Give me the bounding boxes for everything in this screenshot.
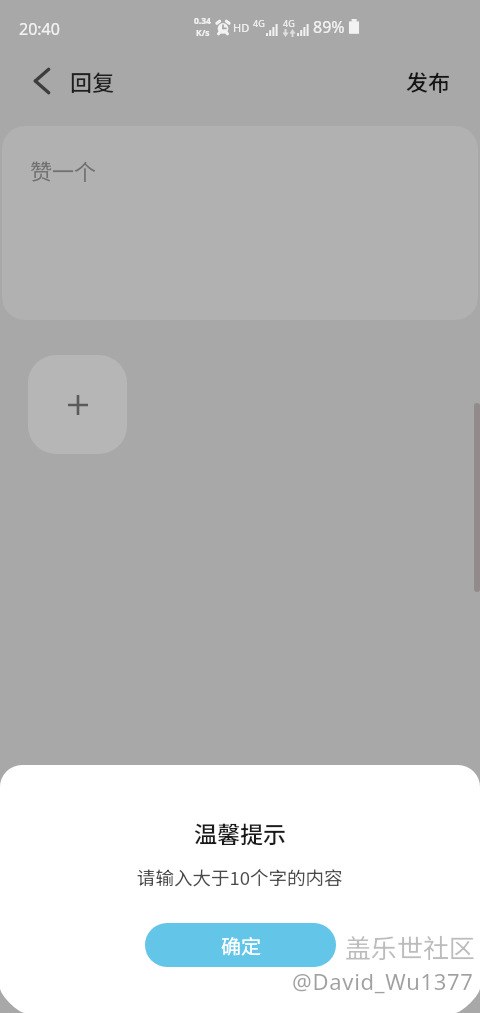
staticText: K/s [196, 27, 210, 39]
staticText: 发布 [406, 65, 451, 97]
button[interactable]: Back [0, 50, 125, 112]
button[interactable]: 确定 [145, 923, 336, 967]
button[interactable]: 赞一个 [2, 126, 478, 320]
staticText: 4G [253, 17, 265, 29]
staticText: 确定 [221, 931, 261, 960]
staticText: 4G [283, 17, 295, 29]
staticText: 回复 [70, 65, 115, 97]
staticText: @David_Wu1377 [292, 966, 474, 996]
staticText: 89% [313, 16, 345, 38]
staticText: 赞一个 [30, 154, 97, 186]
staticText: 0.34 [194, 15, 211, 27]
staticText: 请输入大于10个字的内容 [137, 864, 343, 891]
button[interactable]: 发布 [386, 50, 480, 112]
other: Back [34, 67, 50, 95]
staticText: 盖乐世社区 [345, 928, 476, 966]
button[interactable]: Add photo [28, 355, 127, 454]
staticText: 20:40 [19, 18, 60, 40]
staticText: HD [233, 20, 250, 35]
staticText: 温馨提示 [194, 816, 286, 849]
